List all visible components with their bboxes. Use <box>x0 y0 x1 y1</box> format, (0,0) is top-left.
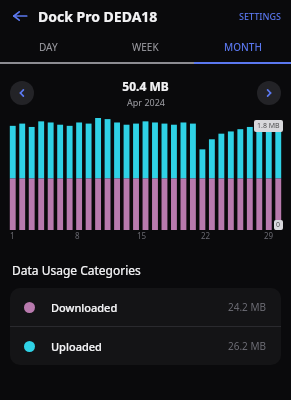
button[interactable]: Uploaded <box>10 327 281 365</box>
staticText: 22 <box>201 230 211 241</box>
button[interactable]: WEEK <box>97 32 194 62</box>
staticText: 15 <box>137 230 147 241</box>
button[interactable]: MONTH <box>194 32 291 62</box>
button[interactable]: Back <box>8 4 32 28</box>
staticText: 1.8 MB <box>257 121 280 131</box>
button[interactable]: Next month <box>257 81 281 105</box>
staticText: SETTINGS <box>239 10 281 22</box>
staticText: MONTH <box>224 40 262 54</box>
staticText: Dock Pro DEDA18 <box>38 7 158 26</box>
staticText: DAY <box>39 40 58 54</box>
staticText: Data Usage Categories <box>12 262 141 278</box>
staticText: WEEK <box>132 40 159 54</box>
button[interactable]: DAY <box>0 32 97 62</box>
button[interactable]: SETTINGS <box>229 4 291 28</box>
staticText: 24.2 MB <box>228 300 267 314</box>
button[interactable]: Previous month <box>10 81 34 105</box>
button[interactable]: Downloaded <box>10 288 281 326</box>
staticText: 50.4 MB <box>122 78 169 94</box>
staticText: Apr 2024 <box>127 96 165 108</box>
staticText: 26.2 MB <box>228 339 267 353</box>
staticText: Downloaded <box>51 300 118 315</box>
staticText: Uploaded <box>51 339 102 354</box>
staticText: 1 <box>10 230 15 241</box>
staticText: 29 <box>264 230 274 241</box>
staticText: 0 <box>276 220 281 230</box>
staticText: 8 <box>75 230 80 241</box>
